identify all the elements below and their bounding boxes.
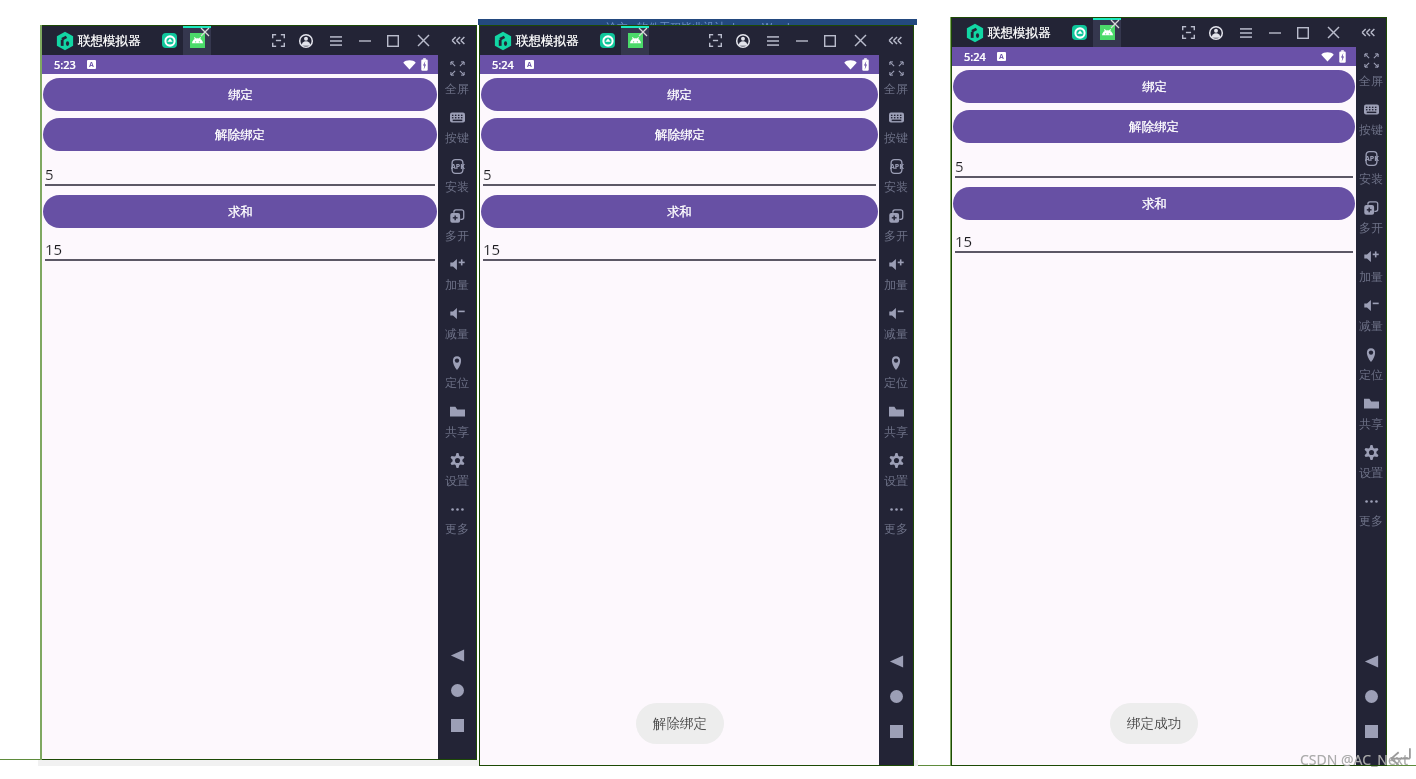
button[interactable]: 解除绑定	[953, 110, 1355, 143]
button[interactable]: Minimize	[1263, 18, 1287, 47]
button[interactable]: 全屏	[1356, 47, 1386, 95]
button[interactable]: Back	[438, 638, 476, 673]
button[interactable]: Close	[411, 26, 435, 55]
button[interactable]: 求和	[953, 187, 1355, 220]
button[interactable]: 共享	[879, 397, 913, 446]
button[interactable]: Maximize	[1291, 18, 1315, 47]
button[interactable]: 绑定成功	[1110, 703, 1198, 744]
button[interactable]: 解除绑定	[43, 118, 437, 151]
button[interactable]: Account	[1204, 18, 1228, 47]
button[interactable]: 求和	[43, 195, 437, 228]
button[interactable]: 多开	[879, 201, 913, 250]
staticText: 定位	[884, 375, 908, 390]
button[interactable]: Menu	[761, 26, 785, 55]
button[interactable]: 减量	[438, 299, 476, 348]
button[interactable]: 全屏	[438, 55, 476, 103]
staticText: 定位	[1359, 367, 1383, 382]
button[interactable]: 定位	[438, 348, 476, 397]
staticText: 15	[483, 239, 501, 259]
button[interactable]: Home	[1356, 679, 1386, 714]
button[interactable]: APK	[438, 152, 476, 201]
button[interactable]: Minimize	[790, 26, 814, 55]
button[interactable]: Home	[879, 679, 913, 714]
button[interactable]: 共享	[1356, 389, 1386, 438]
button[interactable]: 更多	[879, 495, 913, 544]
staticText: 多开	[445, 228, 469, 243]
button[interactable]: Maximize	[381, 26, 405, 55]
staticText: 5:23	[54, 57, 76, 72]
button[interactable]: 共享	[438, 397, 476, 446]
staticText: 减量	[445, 326, 469, 341]
button[interactable]: 绑定	[953, 70, 1355, 103]
button[interactable]: Screenshot	[703, 26, 727, 55]
button[interactable]: Collapse	[1355, 18, 1379, 47]
staticText: A	[527, 60, 532, 69]
button[interactable]: Back	[879, 644, 913, 679]
button[interactable]: Minimize	[353, 26, 377, 55]
button[interactable]: 绑定	[481, 78, 878, 111]
button[interactable]: 更多	[1356, 487, 1386, 536]
button[interactable]: APK	[1356, 144, 1386, 193]
staticText: 绑定	[228, 87, 253, 103]
button[interactable]: 按键	[879, 103, 913, 152]
button[interactable]: Emulator tab	[1093, 18, 1121, 47]
button[interactable]: Recents	[1356, 714, 1386, 749]
button[interactable]: Screenshot	[1176, 18, 1200, 47]
button[interactable]: Account	[294, 26, 318, 55]
button[interactable]: App	[600, 33, 615, 48]
staticText: 解除绑定	[1129, 119, 1179, 135]
button[interactable]: Collapse	[882, 26, 906, 55]
button[interactable]: Home	[438, 673, 476, 708]
button[interactable]: App	[1072, 25, 1087, 40]
staticText: 绑定	[1142, 79, 1167, 95]
staticText: 5	[45, 164, 54, 184]
staticText: 5	[483, 164, 492, 184]
button[interactable]: 减量	[1356, 291, 1386, 340]
staticText: 15	[45, 239, 63, 259]
button[interactable]: Emulator tab	[621, 26, 649, 55]
button[interactable]: Screenshot	[266, 26, 290, 55]
button[interactable]: 解除绑定	[636, 703, 724, 744]
button[interactable]: Account	[731, 26, 755, 55]
button[interactable]: 减量	[879, 299, 913, 348]
staticText: 全屏	[445, 81, 469, 96]
button[interactable]: Collapse	[445, 26, 469, 55]
staticText: 加量	[884, 277, 908, 292]
button[interactable]: 绑定	[43, 78, 437, 111]
button[interactable]: 定位	[1356, 340, 1386, 389]
staticText: 求和	[1142, 196, 1167, 212]
staticText: 更多	[1359, 513, 1383, 528]
button[interactable]: Emulator tab	[183, 26, 211, 55]
button[interactable]: 定位	[879, 348, 913, 397]
button[interactable]: 多开	[1356, 193, 1386, 242]
button[interactable]: Back	[1356, 644, 1386, 679]
button[interactable]: 按键	[438, 103, 476, 152]
staticText: A	[999, 52, 1004, 61]
button[interactable]: Close	[848, 26, 872, 55]
button[interactable]: 加量	[438, 250, 476, 299]
button[interactable]: 求和	[481, 195, 878, 228]
staticText: 加量	[445, 277, 469, 292]
button[interactable]: 多开	[438, 201, 476, 250]
button[interactable]: 设置	[1356, 438, 1386, 487]
button[interactable]: Menu	[324, 26, 348, 55]
button[interactable]: Recents	[879, 714, 913, 749]
button[interactable]: Recents	[438, 708, 476, 743]
button[interactable]: App	[162, 33, 177, 48]
staticText: 解除绑定	[653, 715, 707, 732]
staticText: 共享	[445, 424, 469, 439]
button[interactable]: 设置	[438, 446, 476, 495]
button[interactable]: APK	[879, 152, 913, 201]
button[interactable]: Menu	[1234, 18, 1258, 47]
button[interactable]: 加量	[1356, 242, 1386, 291]
button[interactable]: 加量	[879, 250, 913, 299]
button[interactable]: 全屏	[879, 55, 913, 103]
button[interactable]: 按键	[1356, 95, 1386, 144]
button[interactable]: Maximize	[818, 26, 842, 55]
staticText: 联想模拟器	[78, 33, 141, 49]
button[interactable]: 解除绑定	[481, 118, 878, 151]
button[interactable]: Close	[1321, 18, 1345, 47]
staticText: 全屏	[1359, 73, 1383, 88]
button[interactable]: 设置	[879, 446, 913, 495]
button[interactable]: 更多	[438, 495, 476, 544]
